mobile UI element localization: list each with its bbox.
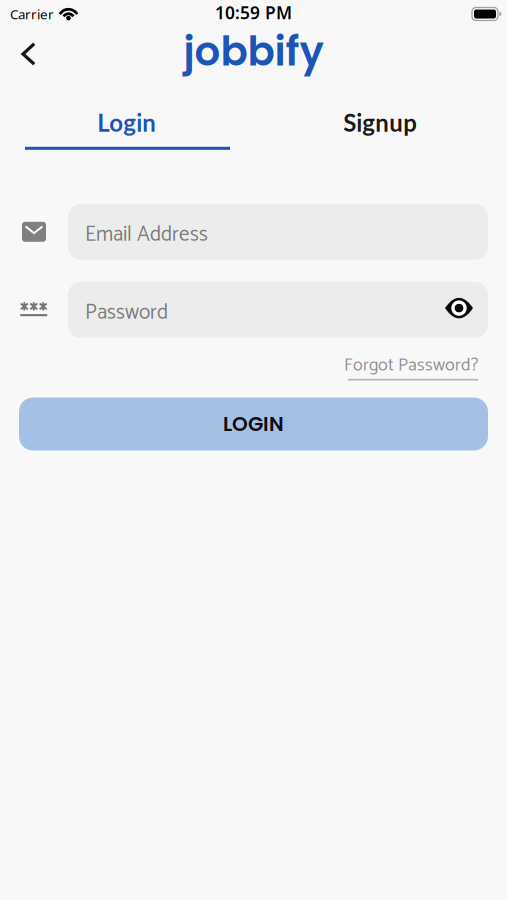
button[interactable]: Email Address <box>68 204 488 260</box>
staticText: Password <box>85 295 168 330</box>
staticText: Forgot Password? <box>344 351 478 380</box>
button[interactable]: LOGIN <box>19 397 488 450</box>
button[interactable] <box>445 299 488 320</box>
staticText: jobbify <box>183 23 323 80</box>
button[interactable]: Login <box>0 108 253 137</box>
staticText: LOGIN <box>223 410 284 438</box>
staticText: Email Address <box>85 217 208 252</box>
staticText: 10:59 PM <box>215 1 292 24</box>
button[interactable]: Password <box>68 282 488 338</box>
staticText: Signup <box>343 108 417 137</box>
button[interactable]: Forgot Password? <box>344 351 478 380</box>
button[interactable]: Signup <box>253 108 507 137</box>
staticText: Login <box>97 108 156 137</box>
staticText: Carrier <box>10 5 54 23</box>
button[interactable] <box>0 28 37 80</box>
